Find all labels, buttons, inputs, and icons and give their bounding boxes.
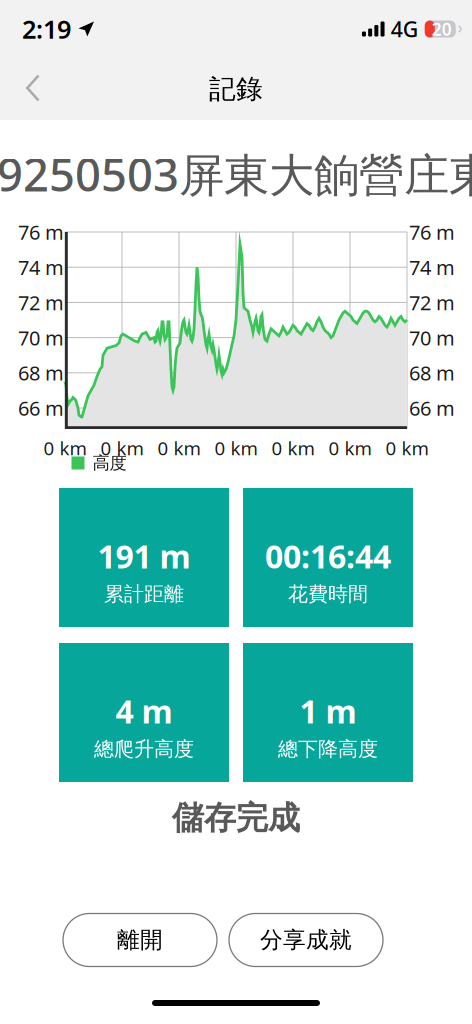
staticText: 花費時間: [288, 582, 368, 606]
button[interactable]: 1 m: [243, 643, 413, 782]
staticText: 總爬升高度: [94, 737, 194, 761]
staticText: 68 m: [18, 360, 64, 386]
staticText: 72 m: [409, 289, 455, 316]
button[interactable]: 4 m: [59, 643, 229, 782]
staticText: 總下降高度: [278, 737, 378, 761]
staticText: 0 km: [214, 436, 257, 460]
staticText: 72 m: [18, 289, 64, 316]
staticText: 高度: [92, 452, 126, 474]
staticText: 2:19: [22, 12, 71, 46]
button[interactable]: Back: [9, 58, 56, 118]
staticText: 4 m: [115, 690, 172, 732]
staticText: 4G: [391, 15, 419, 43]
staticText: 分享成就: [260, 926, 352, 954]
staticText: 0 km: [43, 436, 86, 460]
staticText: 74 m: [409, 254, 455, 280]
staticText: 76 m: [18, 219, 64, 245]
staticText: 191 m: [97, 535, 190, 577]
staticText: 20: [432, 17, 452, 40]
staticText: 0 km: [385, 436, 428, 460]
staticText: 儲存完成: [172, 798, 300, 838]
staticText: 66 m: [409, 395, 455, 421]
staticText: 68 m: [409, 360, 455, 386]
staticText: 9250503屏東大餉營庄東大: [0, 144, 472, 204]
staticText: 0 km: [328, 436, 371, 460]
staticText: 74 m: [18, 254, 64, 280]
button[interactable]: 分享成就: [229, 913, 383, 966]
staticText: 0 km: [100, 436, 143, 460]
staticText: 00:16:44: [265, 535, 391, 577]
staticText: 累計距離: [104, 582, 184, 606]
button[interactable]: 離開: [63, 913, 217, 966]
staticText: 離開: [117, 926, 163, 954]
button[interactable]: 191 m: [59, 488, 229, 627]
staticText: 0 km: [271, 436, 314, 460]
button[interactable]: 00:16:44: [243, 488, 413, 627]
staticText: 70 m: [409, 324, 455, 351]
staticText: 0 km: [157, 436, 200, 460]
staticText: 1 m: [299, 690, 356, 732]
staticText: 70 m: [18, 324, 64, 351]
staticText: 66 m: [18, 395, 64, 421]
staticText: 76 m: [409, 219, 455, 245]
staticText: 記錄: [209, 73, 263, 105]
